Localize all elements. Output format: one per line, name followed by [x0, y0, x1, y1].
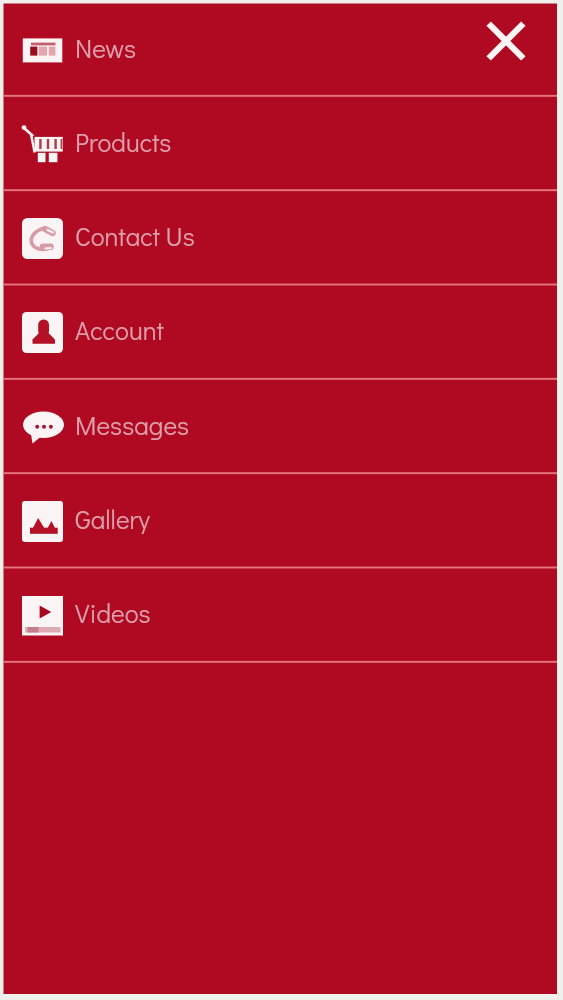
staticText: Videos [75, 596, 151, 630]
button[interactable]: Contact Us [4, 192, 558, 286]
staticText: Account [75, 313, 164, 347]
staticText: News [75, 31, 137, 65]
staticText: Messages [75, 408, 190, 442]
button[interactable]: Close [479, 14, 533, 68]
button[interactable]: Gallery [4, 475, 558, 569]
button[interactable]: Account [4, 286, 558, 380]
button[interactable]: Messages [4, 381, 558, 475]
button[interactable]: Videos [4, 569, 558, 663]
staticText: Contact Us [75, 219, 195, 253]
staticText: Products [75, 125, 172, 159]
button[interactable]: Products [4, 98, 558, 192]
button[interactable]: News [4, 4, 558, 98]
staticText: Gallery [75, 502, 151, 536]
